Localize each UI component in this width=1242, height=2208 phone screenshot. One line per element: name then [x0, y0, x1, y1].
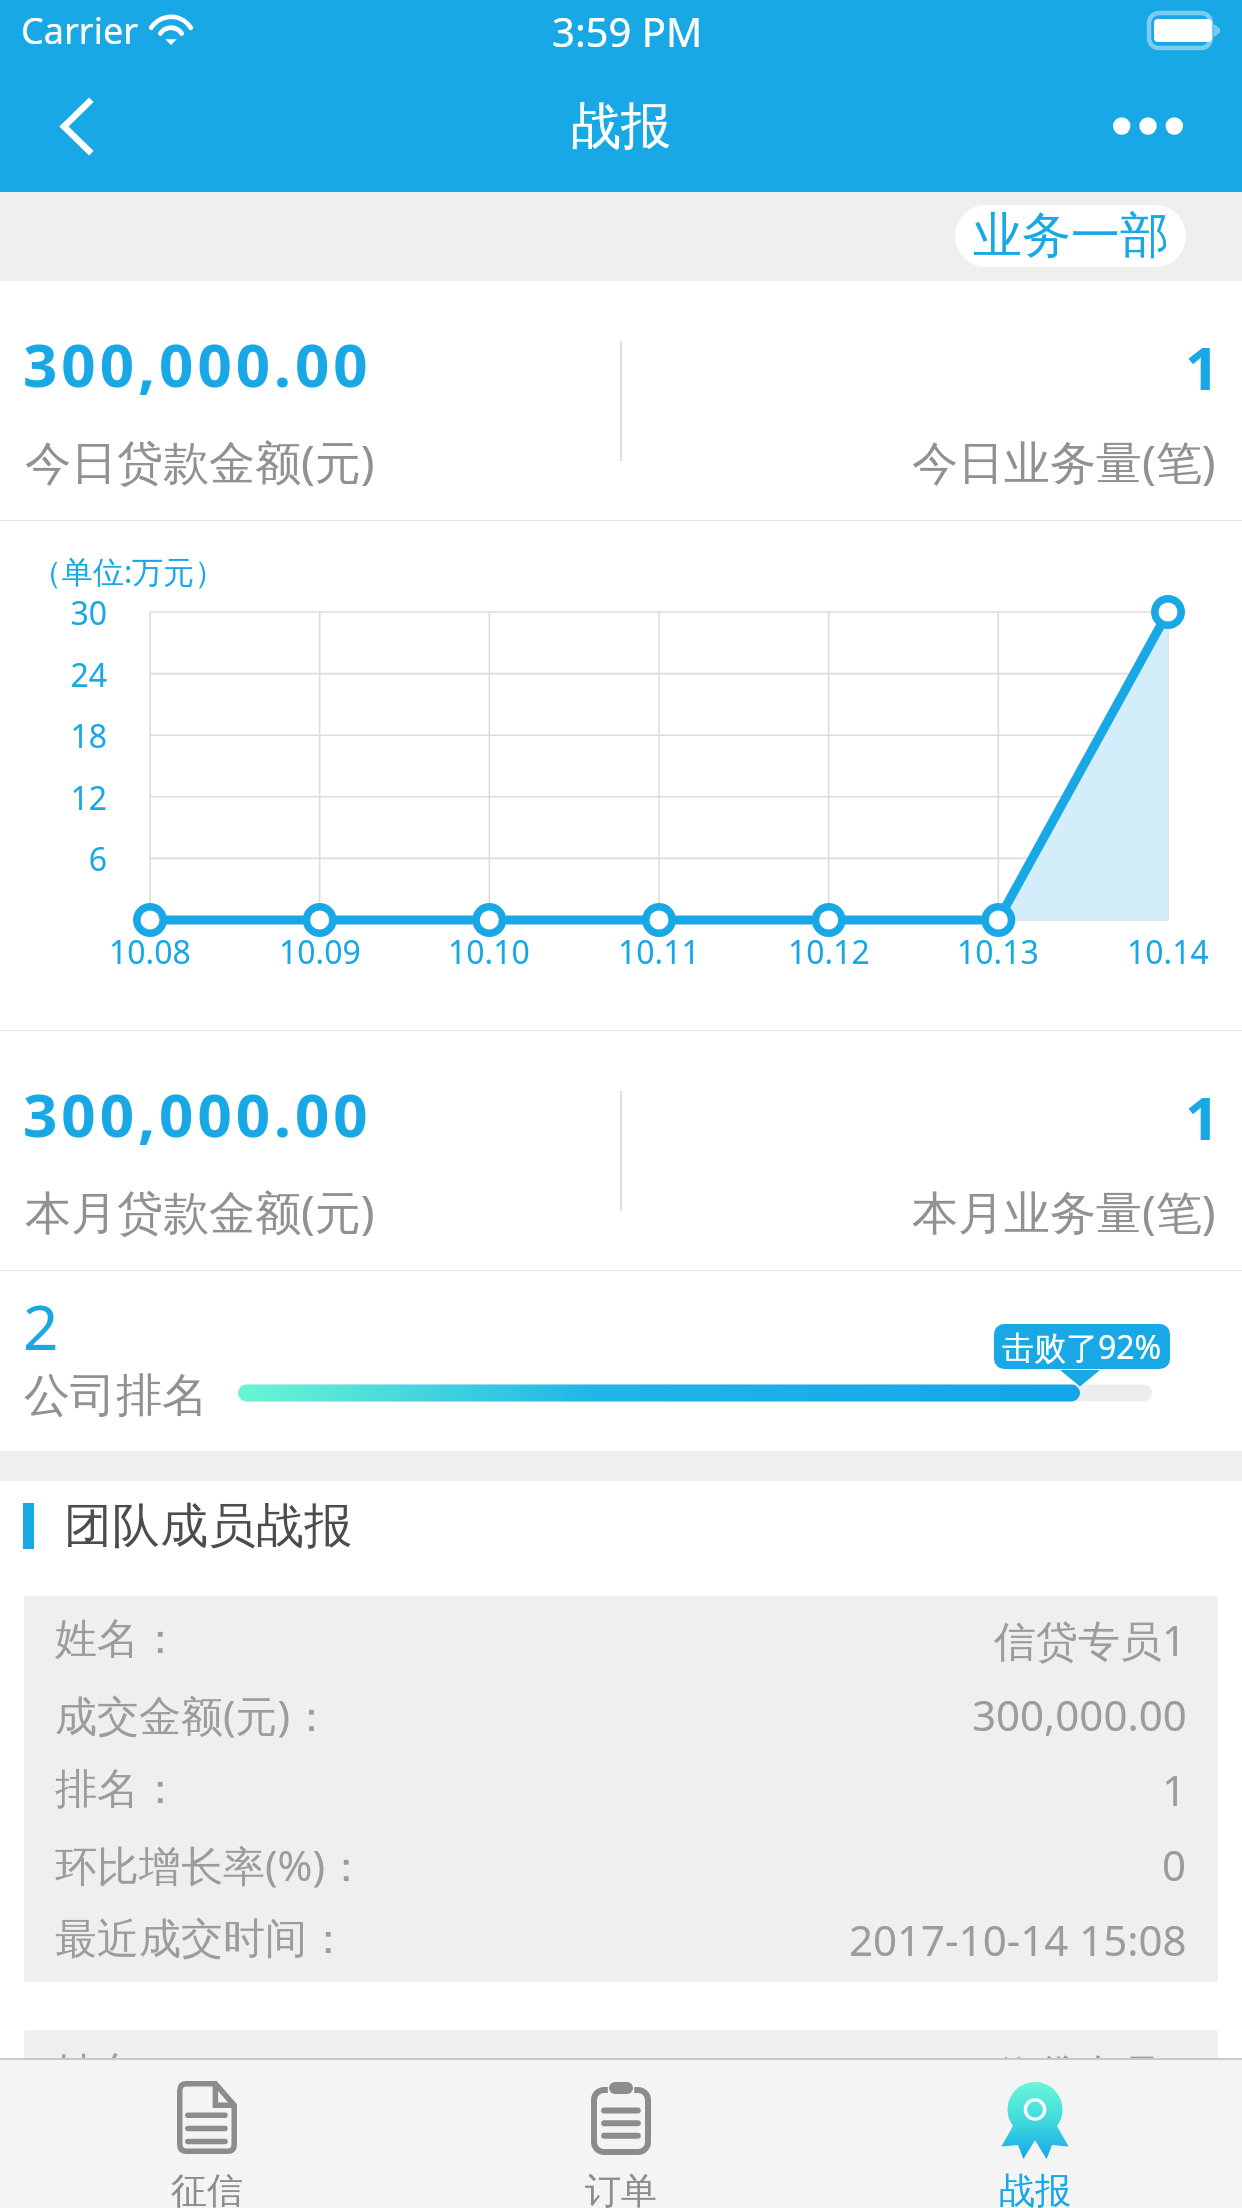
button[interactable]: 业务一部	[955, 205, 1186, 267]
button[interactable]: 姓名：	[24, 2030, 1218, 2208]
button[interactable]: 征信	[0, 2058, 414, 2208]
staticText: 排名：	[55, 2186, 181, 2203]
staticText: 姓名：	[55, 2047, 181, 2100]
staticText: 2017-10-14 15:08	[849, 1911, 1187, 1968]
staticText: 10.14	[1127, 930, 1209, 974]
staticText: 18	[70, 714, 107, 758]
staticText: 24	[70, 653, 107, 697]
staticText: 战报	[571, 95, 671, 158]
staticText: 团队成员战报	[64, 1496, 352, 1556]
staticText: 6	[88, 837, 107, 881]
staticText: 业务一部	[973, 205, 1169, 267]
staticText: 订单	[585, 2168, 657, 2208]
staticText: （单位:万元）	[31, 550, 226, 592]
staticText: Carrier	[21, 6, 139, 55]
staticText: 今日贷款金额(元)	[25, 430, 375, 493]
staticText: 1	[1185, 1076, 1224, 1158]
staticText: 最近成交时间：	[55, 1913, 349, 1966]
staticText: 排名：	[55, 1763, 181, 1816]
staticText: 公司排名	[24, 1367, 208, 1425]
staticText: 10.11	[618, 930, 700, 974]
staticText: 10.08	[109, 930, 191, 974]
staticText: 击败了92%	[1002, 1325, 1162, 1369]
staticText: 环比增长率(%)：	[55, 1836, 368, 1893]
staticText: 战报	[999, 2168, 1071, 2208]
staticText: 10.09	[279, 930, 361, 974]
staticText: 300,000.00	[23, 323, 372, 405]
staticText: 本月贷款金额(元)	[25, 1180, 375, 1243]
staticText: 信贷专员1	[994, 1611, 1187, 1668]
staticText: 300,000.00	[972, 2120, 1187, 2177]
staticText: 今日业务量(笔)	[912, 430, 1216, 493]
staticText: 10.13	[957, 930, 1039, 974]
staticText: 本月业务量(笔)	[912, 1180, 1216, 1243]
staticText: 成交金额(元)：	[55, 1686, 333, 1743]
staticText: 10.12	[788, 930, 870, 974]
staticText: 1	[1185, 326, 1224, 408]
staticText: 2	[23, 1284, 59, 1368]
staticText: 10.10	[448, 930, 530, 974]
staticText: 0	[1162, 1836, 1187, 1893]
button[interactable]: Back	[0, 60, 128, 192]
staticText: 30	[70, 591, 107, 635]
staticText: 姓名：	[55, 1613, 181, 1666]
button[interactable]: 订单	[414, 2058, 828, 2208]
staticText: 12	[70, 776, 107, 820]
button[interactable]: More options	[1102, 60, 1242, 192]
staticText: 300,000.00	[23, 1073, 372, 1155]
staticText: 成交金额(元)：	[55, 2120, 333, 2177]
staticText: 300,000.00	[972, 1686, 1187, 1743]
staticText: 征信	[171, 2168, 243, 2208]
staticText: 信贷专员1	[994, 2045, 1187, 2102]
button[interactable]: 姓名：	[24, 1596, 1218, 1982]
button[interactable]: 战报	[828, 2058, 1242, 2208]
button[interactable]: 击败了92%	[994, 1324, 1170, 1369]
staticText: 1	[1162, 1761, 1187, 1818]
staticText: 3:59 PM	[552, 4, 703, 58]
